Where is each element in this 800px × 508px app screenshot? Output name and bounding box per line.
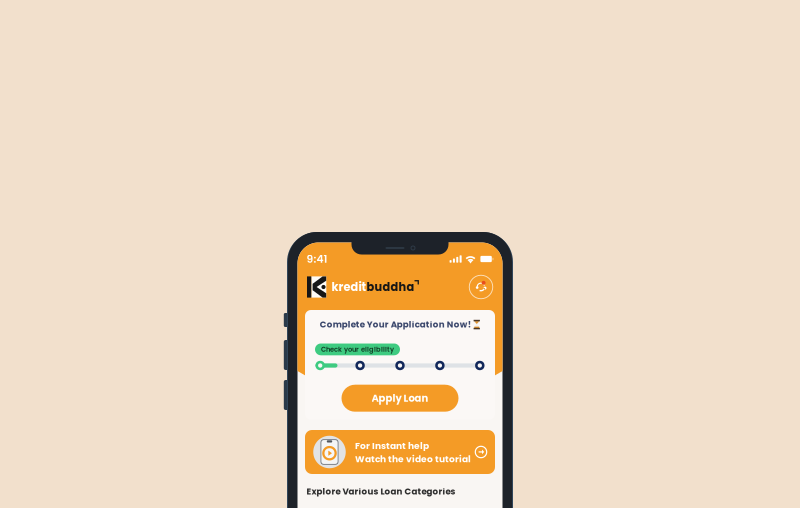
staticText: 9:41 [306,251,327,266]
staticText: Apply Loan [371,391,428,405]
button[interactable]: Customer support [469,275,493,299]
staticText: kredit [331,279,366,295]
staticText: Complete Your Application Now! [320,318,471,330]
staticText: buddha [366,279,414,295]
button[interactable]: For Instant help [305,430,495,474]
button[interactable]: Apply Loan [341,385,458,412]
staticText: Watch the video tutorial [355,453,471,465]
staticText: For Instant help [355,440,429,452]
staticText: Explore Various Loan Categories [306,485,455,498]
staticText: Check your eligibility [321,345,394,354]
